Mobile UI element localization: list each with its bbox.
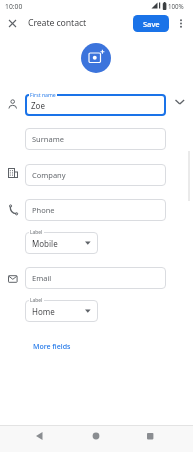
button[interactable] [140, 428, 160, 448]
staticText: Surname [32, 134, 64, 144]
staticText: Save [143, 19, 160, 29]
button[interactable] [86, 428, 106, 448]
staticText: Home [32, 306, 55, 317]
staticText: More fields [33, 342, 71, 352]
staticText: Zoe [31, 100, 45, 111]
staticText: Mobile [32, 238, 58, 249]
button[interactable]: Phone [25, 199, 166, 221]
button[interactable]: Surname [25, 128, 166, 150]
staticText: First name [30, 91, 56, 98]
staticText: 100% [168, 2, 184, 10]
staticText: Create contact [28, 17, 87, 29]
button[interactable] [81, 43, 111, 73]
button[interactable]: Email [25, 267, 166, 289]
button[interactable] [172, 94, 188, 108]
staticText: Label [30, 297, 43, 304]
button[interactable]: Home [25, 300, 98, 322]
staticText: Phone [32, 205, 55, 215]
button[interactable]: More fields [28, 340, 78, 354]
button[interactable]: Zoe [25, 94, 166, 116]
staticText: Email [32, 273, 52, 283]
button[interactable] [175, 16, 187, 31]
button[interactable]: Company [25, 164, 166, 186]
staticText: 10:00 [5, 2, 23, 11]
button[interactable] [5, 16, 20, 31]
staticText: Label [30, 229, 43, 236]
staticText: Company [32, 170, 66, 180]
button[interactable]: Mobile [25, 232, 98, 254]
button[interactable]: Save [133, 15, 169, 32]
button[interactable] [29, 428, 49, 448]
